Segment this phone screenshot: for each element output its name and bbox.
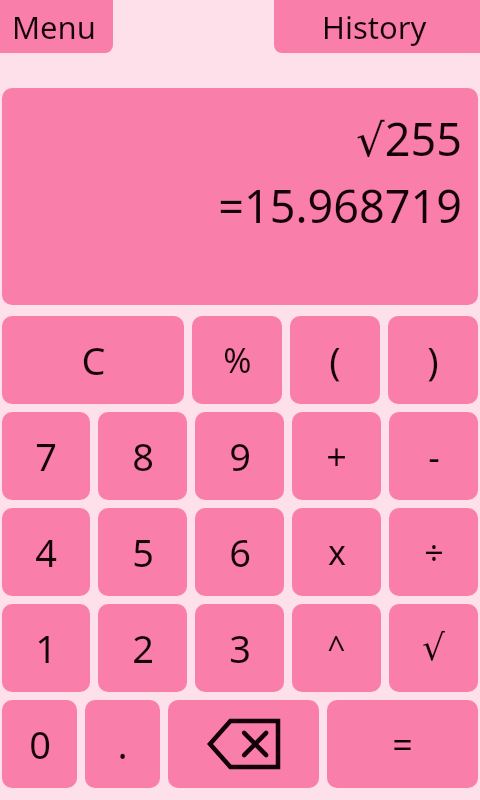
button[interactable]: ÷ [389,508,478,596]
staticText: ÷ [424,529,444,575]
button[interactable]: 1 [2,604,90,692]
staticText: ) [427,334,439,386]
button[interactable]: 0 [2,700,77,788]
button[interactable]: Backspace [168,700,319,788]
staticText: + [326,432,347,481]
staticText: √255 [356,108,462,169]
button[interactable]: 7 [2,412,90,500]
button[interactable]: % [192,316,282,404]
button[interactable]: 6 [195,508,284,596]
staticText: 0 [29,718,51,770]
button[interactable]: - [389,412,478,500]
staticText: 1 [35,622,57,674]
staticText: 2 [132,622,154,674]
staticText: 8 [132,430,154,482]
staticText: √ [422,627,445,669]
staticText: 5 [132,526,154,578]
button[interactable]: History [274,0,480,53]
button[interactable]: x [292,508,381,596]
staticText: 4 [35,526,57,578]
staticText: 3 [229,622,251,674]
staticText: History [322,6,427,48]
button[interactable]: . [85,700,160,788]
button[interactable]: 3 [195,604,284,692]
button[interactable]: + [292,412,381,500]
button[interactable]: ^ [292,604,381,692]
staticText: 7 [35,430,57,482]
staticText: Menu [12,6,96,48]
staticText: = [392,720,413,769]
button[interactable]: 4 [2,508,90,596]
staticText: % [223,337,252,383]
staticText: . [117,718,128,770]
staticText: ^ [327,626,346,670]
staticText: =15.968719 [218,175,462,236]
staticText: - [428,432,440,481]
staticText: 9 [229,430,251,482]
staticText: ( [329,334,341,386]
staticText: 6 [229,526,251,578]
button[interactable]: C [2,316,184,404]
staticText: C [81,334,106,386]
button[interactable]: = [327,700,478,788]
button[interactable]: 2 [98,604,187,692]
button[interactable]: 8 [98,412,187,500]
button[interactable]: 5 [98,508,187,596]
staticText: x [328,529,346,575]
button[interactable]: ) [388,316,478,404]
button[interactable]: ( [290,316,380,404]
button[interactable]: 9 [195,412,284,500]
button[interactable]: Menu [0,0,113,53]
button[interactable]: √ [389,604,478,692]
